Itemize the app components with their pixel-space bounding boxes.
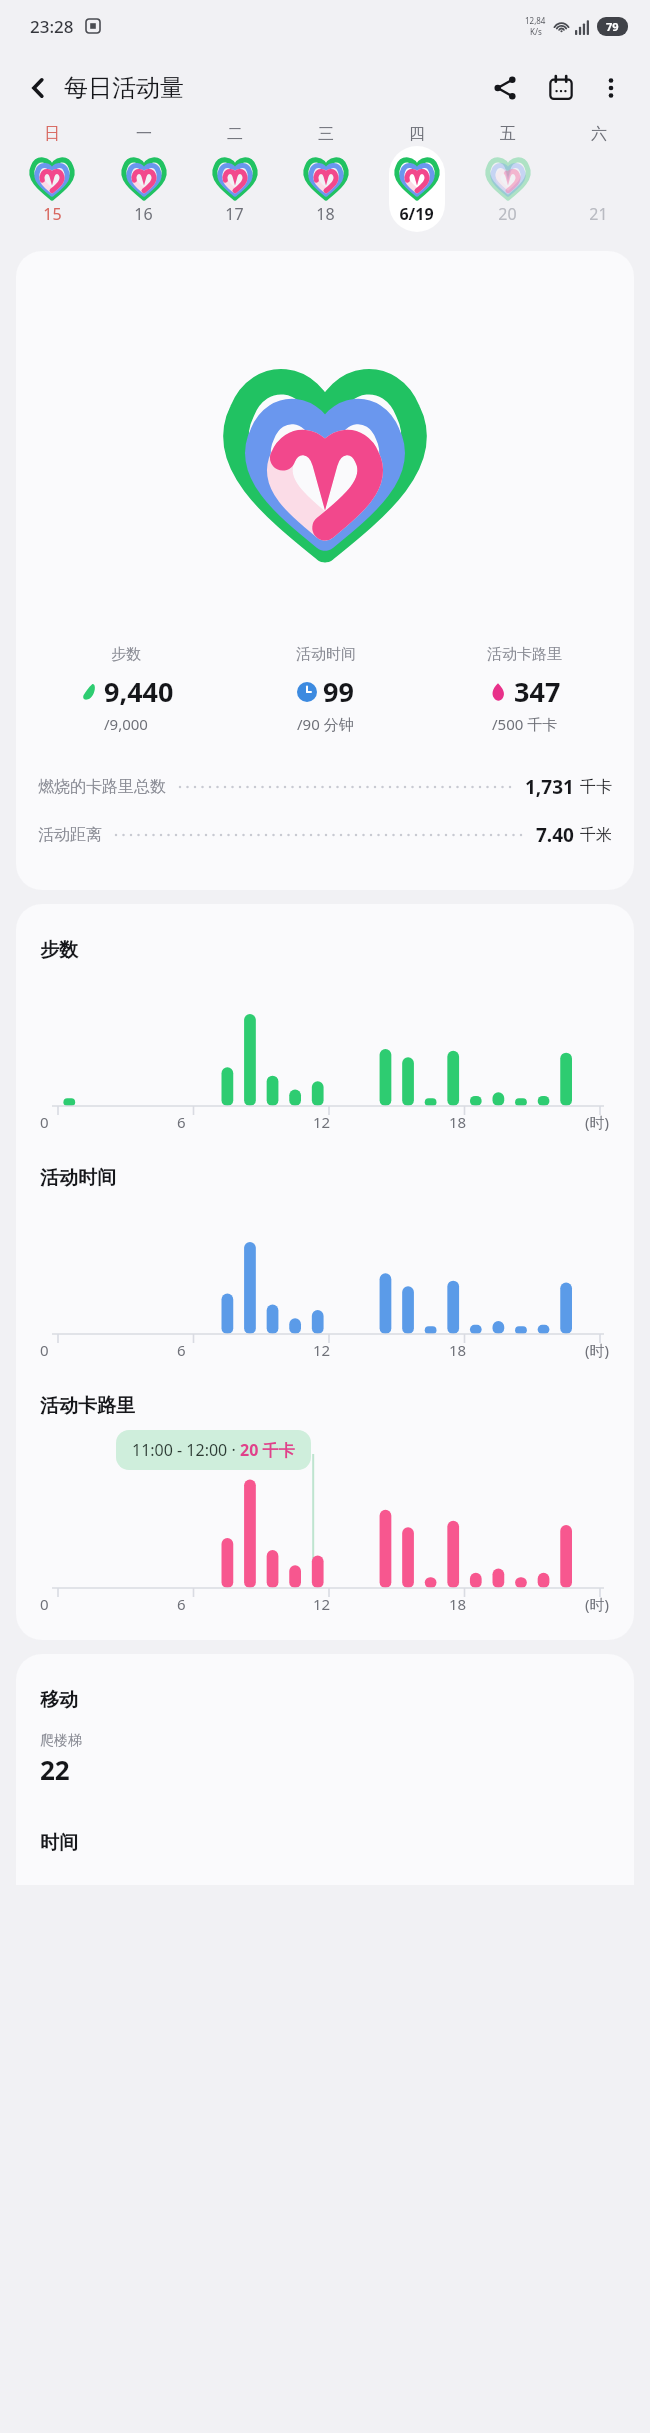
staticText: 一 <box>136 124 152 144</box>
staticText: 23:28 <box>30 15 74 38</box>
button[interactable]: 日 <box>6 124 98 239</box>
staticText: 12 <box>313 1112 331 1132</box>
button[interactable]: 活动时间 <box>16 1132 634 1360</box>
button[interactable]: 三 <box>280 124 371 239</box>
staticText: 1,731 <box>525 774 574 800</box>
button[interactable]: 燃烧的卡路里总数 <box>38 774 612 800</box>
staticText: 二 <box>227 124 243 144</box>
staticText: 活动卡路里 <box>40 1394 135 1418</box>
staticText: 6 <box>177 1112 186 1132</box>
staticText: 6/19 <box>399 203 434 225</box>
staticText: (时) <box>585 1112 610 1132</box>
staticText: 时间 <box>40 1831 78 1855</box>
staticText: 千卡 <box>580 777 612 797</box>
staticText: 活动时间 <box>40 1166 116 1190</box>
button[interactable]: More options <box>588 65 634 111</box>
staticText: 17 <box>225 203 244 225</box>
staticText: 16 <box>134 203 153 225</box>
staticText: K/s <box>530 26 542 37</box>
button[interactable]: 活动时间 <box>226 645 425 734</box>
staticText: 18 <box>449 1112 467 1132</box>
staticText: 18 <box>449 1594 467 1614</box>
staticText: 每日活动量 <box>64 73 184 103</box>
staticText: 6 <box>177 1340 186 1360</box>
staticText: 三 <box>318 124 334 144</box>
staticText: (时) <box>585 1594 610 1614</box>
staticText: 爬楼梯 <box>40 1732 82 1750</box>
button[interactable]: 二 <box>189 124 280 239</box>
button[interactable]: 一 <box>98 124 189 239</box>
staticText: 燃烧的卡路里总数 <box>38 777 166 797</box>
staticText: 步数 <box>40 938 78 962</box>
staticText: /9,000 <box>104 714 148 734</box>
button[interactable]: Calendar <box>536 63 586 113</box>
button[interactable]: 步数 <box>16 904 634 1132</box>
staticText: 0 <box>40 1594 49 1614</box>
staticText: 12 <box>313 1594 331 1614</box>
staticText: 移动 <box>40 1688 78 1712</box>
staticText: 6 <box>177 1594 186 1614</box>
staticText: 0 <box>40 1340 49 1360</box>
staticText: 18 <box>316 203 335 225</box>
staticText: 六 <box>591 124 607 144</box>
button[interactable]: 五 <box>462 124 553 239</box>
staticText: 15 <box>43 203 62 225</box>
staticText: 18 <box>449 1340 467 1360</box>
staticText: 21 <box>589 203 608 225</box>
staticText: 79 <box>606 19 619 34</box>
staticText: 千米 <box>580 825 612 845</box>
staticText: (时) <box>585 1340 610 1360</box>
staticText: 22 <box>40 1752 70 1787</box>
button[interactable]: 活动距离 <box>38 822 612 848</box>
staticText: /90 分钟 <box>297 714 354 734</box>
staticText: 0 <box>40 1112 49 1132</box>
button[interactable]: Back <box>14 64 62 112</box>
staticText: 活动时间 <box>296 645 356 664</box>
staticText: 五 <box>500 124 516 144</box>
staticText: 20 <box>498 203 517 225</box>
button[interactable]: 六 <box>553 124 644 239</box>
staticText: 活动卡路里 <box>487 645 562 664</box>
staticText: 347 <box>514 673 561 710</box>
staticText: 12,84 <box>525 15 546 26</box>
staticText: 步数 <box>111 645 141 664</box>
staticText: /500 千卡 <box>492 714 558 734</box>
staticText: 11:00 - 12:00 · <box>132 1439 240 1461</box>
button[interactable]: 步数 <box>16 251 634 890</box>
staticText: 12 <box>313 1340 331 1360</box>
button[interactable]: 四 <box>371 124 462 239</box>
staticText: 日 <box>44 124 60 144</box>
button[interactable]: Share <box>480 63 530 113</box>
button[interactable]: 活动卡路里 <box>425 645 624 734</box>
staticText: 7.40 <box>536 822 574 848</box>
staticText: 四 <box>409 124 425 144</box>
staticText: 20 千卡 <box>240 1439 295 1461</box>
staticText: 9,440 <box>104 673 174 710</box>
staticText: 99 <box>323 673 354 710</box>
staticText: 活动距离 <box>38 825 102 845</box>
button[interactable]: 步数 <box>26 645 226 734</box>
button[interactable]: 活动卡路里 <box>16 1360 634 1614</box>
